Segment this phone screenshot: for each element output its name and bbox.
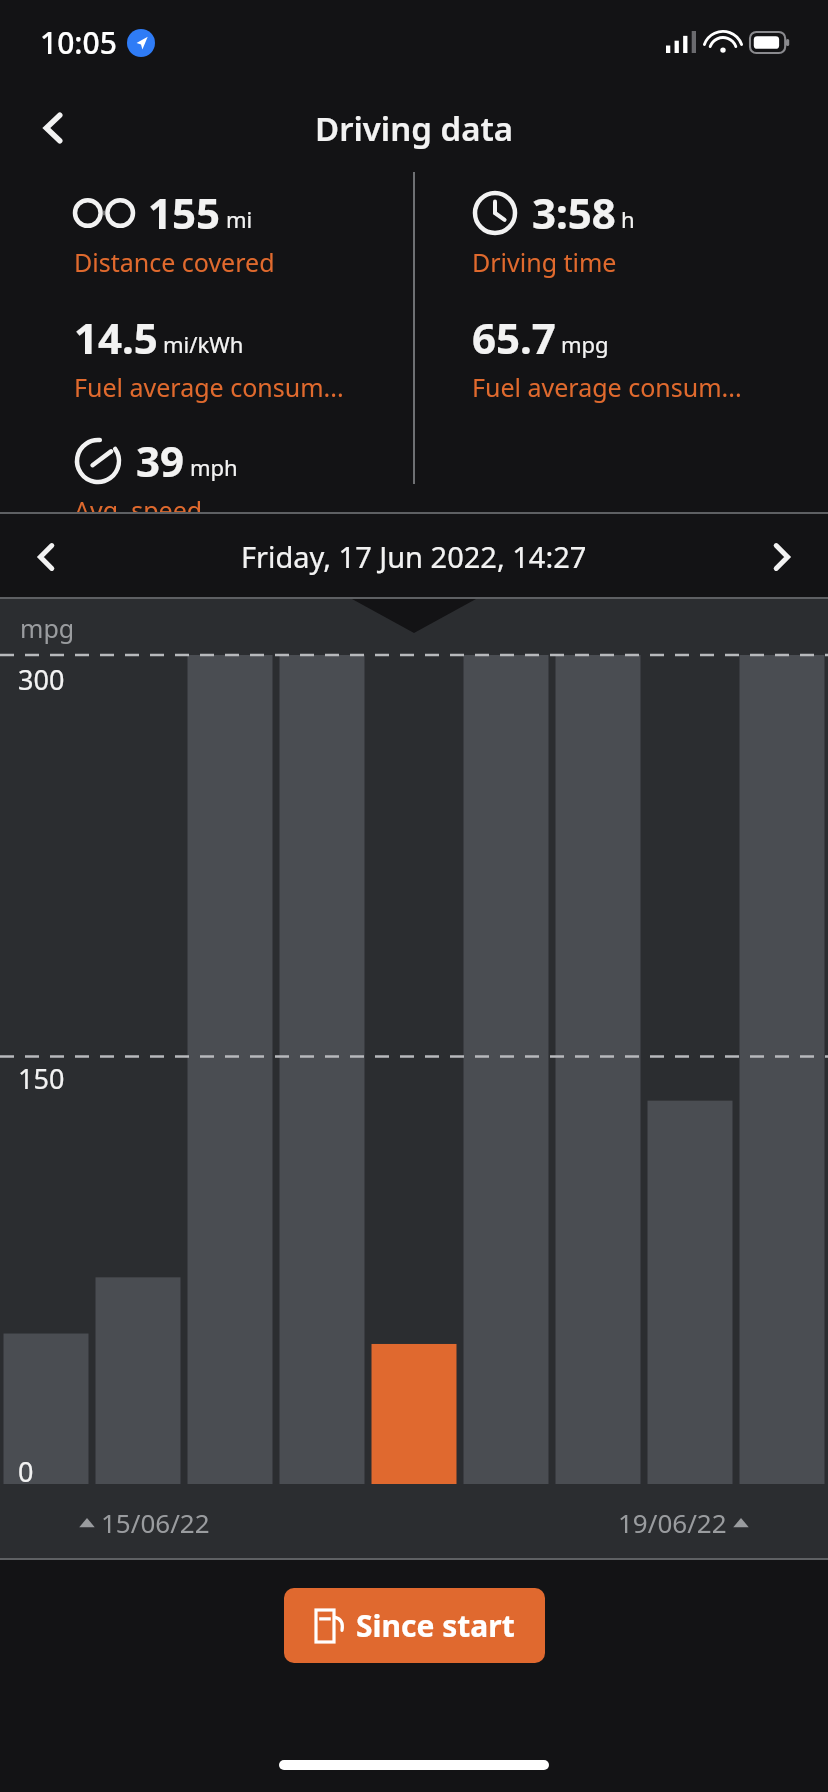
staticText: mph (190, 452, 238, 482)
staticText: mpg (561, 329, 609, 359)
staticText: 155 (148, 184, 221, 241)
staticText: mpg (20, 611, 75, 645)
button[interactable]: 14.5 (74, 309, 344, 404)
staticText: 15/06/22 (101, 1505, 210, 1540)
button[interactable]: Previous day (16, 526, 78, 588)
button[interactable]: 65.7 (472, 309, 742, 404)
staticText: Since start (356, 1605, 515, 1646)
staticText: 3:58 (532, 184, 616, 241)
staticText: Driving data (315, 106, 514, 151)
button[interactable]: 3:58 (472, 184, 635, 279)
staticText: mi/kWh (163, 329, 244, 359)
button[interactable]: Since start (284, 1588, 545, 1663)
staticText: Fuel average consum... (472, 370, 742, 404)
staticText: Driving time (472, 245, 617, 279)
staticText: Distance covered (74, 245, 275, 279)
staticText: 0 (18, 1453, 34, 1490)
staticText: 19/06/22 (618, 1505, 727, 1540)
button[interactable]: 155 (74, 184, 275, 279)
staticText: h (621, 204, 635, 234)
staticText: 14.5 (74, 309, 158, 366)
staticText: 39 (136, 432, 185, 489)
staticText: 300 (18, 661, 65, 698)
staticText: 65.7 (472, 309, 556, 366)
staticText: 10:05 (40, 22, 117, 63)
staticText: mi (226, 204, 253, 234)
staticText: Fuel average consum... (74, 370, 344, 404)
staticText: Avg. speed (74, 493, 203, 512)
staticText: 150 (18, 1060, 65, 1097)
button[interactable]: 39 (74, 432, 238, 512)
button[interactable]: Next day (750, 526, 812, 588)
staticText: Friday, 17 Jun 2022, 14:27 (241, 537, 587, 576)
button[interactable]: Back (22, 96, 86, 160)
